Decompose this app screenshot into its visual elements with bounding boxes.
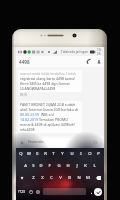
staticText: W [27,151,31,157]
staticText: J [76,163,78,169]
staticText: D [39,163,43,169]
button[interactable]: C [47,172,56,184]
staticText: R [44,151,47,157]
staticText: Tidak ada jaringan [61,50,88,54]
staticText: nomor anda tidak terdaftar. Untuk [20,71,77,76]
staticText: Z [32,175,35,181]
button[interactable]: nomor anda tidak terdaftar. Untuk [20,71,80,91]
button[interactable]: L [90,160,99,172]
staticText: 14.02.2019 [20,117,38,122]
button[interactable]: V [56,172,65,184]
button[interactable]: J [72,160,81,172]
button[interactable]: X [38,172,47,184]
button[interactable]: M [83,172,92,184]
staticText: C [50,175,53,181]
staticText: registrasi ulang kartu 4498 kamu! [20,76,76,81]
button[interactable]: Call [85,57,94,66]
button[interactable]: H [63,160,72,172]
button[interactable]: Settings [34,188,41,195]
button[interactable]: B [65,172,74,184]
button[interactable]: R [41,148,49,160]
button[interactable]: K [81,160,90,172]
staticText: ULANGWRAPALL4498 [20,86,56,91]
staticText: B [68,175,71,181]
button[interactable]: E [33,148,41,160]
staticText: info4498 [20,127,35,132]
button[interactable]: Y [58,148,67,160]
staticText: S [32,163,35,169]
staticText: L [93,163,96,169]
staticText: Q [19,151,23,157]
button[interactable]: F [45,160,54,172]
button[interactable]: Shift [16,172,28,184]
staticText: M [86,175,90,181]
button[interactable]: Q [17,148,25,160]
staticText: A [24,163,27,169]
staticText: G [57,163,61,169]
staticText: V [59,175,62,181]
button[interactable]: Contact details [94,57,103,66]
staticText: Temukan PROMO [38,117,68,122]
staticText: Y [61,151,64,157]
button[interactable]: S [29,160,37,172]
button[interactable]: Add attachment [18,139,25,146]
staticText: T [52,151,55,157]
staticText: N [77,175,81,181]
button[interactable]: O [85,148,94,160]
button[interactable]: Emoji [27,188,34,195]
button[interactable]: P [94,148,103,160]
button[interactable]: I [76,148,85,160]
button[interactable]: D [37,160,45,172]
staticText: Pesan teks [28,140,44,144]
staticText: K [84,163,87,169]
staticText: E [36,151,39,157]
button[interactable]: N [74,172,83,184]
button[interactable]: T [49,148,58,160]
staticText: Kirim SMS ke 4498 dgn format [20,81,70,86]
button[interactable]: Period [88,189,94,195]
staticText: WIB s/d [40,112,54,117]
button[interactable]: Send [94,188,102,196]
button[interactable]: Z [28,172,38,184]
button[interactable]: W [25,148,33,160]
staticText: F [48,163,51,169]
button[interactable]: U [67,148,76,160]
staticText: 4498 [19,59,30,65]
staticText: O [88,151,92,157]
staticText: 00.00-23.59 [20,112,40,117]
button[interactable]: Backspace [92,172,104,184]
button[interactable]: Pesan teks [25,138,100,146]
staticText: U [70,151,74,157]
staticText: P [97,151,100,157]
staticText: 09:18 [20,93,27,97]
staticText: menarik 4498 di aplikasi 4498nih! [20,122,75,127]
button[interactable]: ?123 [16,184,27,199]
staticText: aktif. Internet kuota 2GB berlaku di [20,107,78,112]
staticText: 10:25 [97,48,103,56]
button[interactable]: Space [43,188,86,195]
button[interactable]: A [21,160,29,172]
button[interactable]: PAKET BRONET 24JAM 2GB sudah [20,102,80,132]
staticText: ?123 [18,190,25,194]
staticText: PAKET BRONET 24JAM 2GB sudah [20,102,75,107]
staticText: X [41,175,44,181]
staticText: H [66,163,70,169]
button[interactable]: G [54,160,63,172]
staticText: I [80,151,82,157]
